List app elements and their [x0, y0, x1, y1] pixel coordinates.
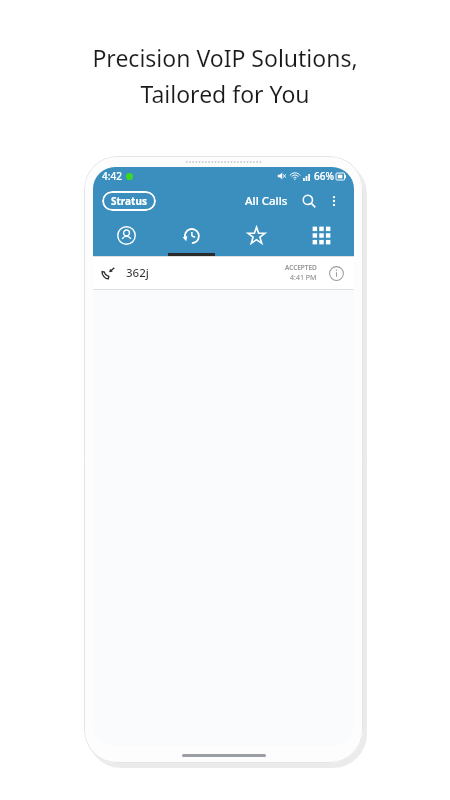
- button[interactable]: 362j: [93, 257, 354, 289]
- staticText: 66%: [314, 169, 334, 183]
- staticText: 362j: [126, 265, 149, 281]
- staticText: All Calls: [245, 193, 288, 209]
- button[interactable]: Stratus: [102, 191, 156, 211]
- staticText: 4:42: [102, 169, 122, 183]
- button[interactable]: Call history: [159, 217, 224, 253]
- button[interactable]: Call details: [326, 263, 346, 283]
- button[interactable]: More options: [324, 191, 344, 211]
- button[interactable]: Search: [298, 190, 320, 212]
- staticText: ACCEPTED: [285, 263, 317, 272]
- staticText: Tailored for You: [140, 78, 310, 109]
- staticText: Precision VoIP Solutions,: [92, 42, 358, 73]
- button[interactable]: Favorites: [224, 217, 289, 253]
- button[interactable]: Dialpad: [289, 217, 354, 253]
- staticText: Stratus: [111, 194, 147, 208]
- button[interactable]: All Calls: [243, 189, 290, 213]
- button[interactable]: Contacts: [93, 217, 159, 253]
- staticText: 4:41 PM: [290, 273, 317, 283]
